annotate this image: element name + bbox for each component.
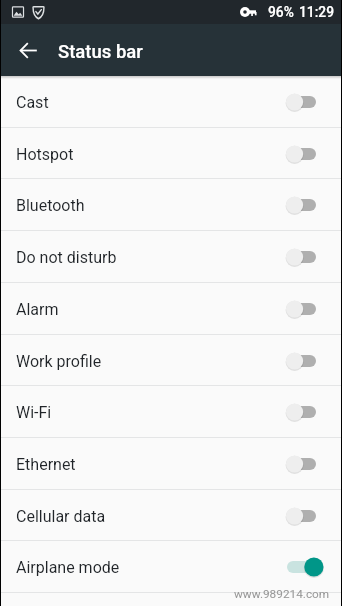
- staticText: 11:29: [299, 4, 335, 20]
- button[interactable]: Hotspot: [0, 128, 342, 180]
- button[interactable]: Cellular data: [0, 490, 342, 542]
- staticText: 96%: [268, 4, 294, 20]
- staticText: Alarm: [16, 300, 59, 319]
- staticText: Hotspot: [16, 145, 74, 164]
- staticText: Cast: [16, 93, 49, 112]
- staticText: Bluetooth: [16, 196, 85, 215]
- button[interactable]: Wi-Fi: [0, 386, 342, 438]
- staticText: Airplane mode: [16, 558, 120, 577]
- staticText: www.989214.com: [234, 587, 330, 601]
- button[interactable]: Cast: [0, 76, 342, 128]
- staticText: Work profile: [16, 352, 102, 371]
- button[interactable]: Work profile: [0, 335, 342, 387]
- button[interactable]: Do not disturb: [0, 231, 342, 283]
- staticText: Status bar: [58, 41, 143, 63]
- staticText: Cellular data: [16, 507, 106, 526]
- staticText: Ethernet: [16, 455, 76, 474]
- staticText: Wi-Fi: [16, 403, 52, 422]
- button[interactable]: Airplane mode: [0, 541, 342, 593]
- button[interactable]: Bluetooth: [0, 179, 342, 231]
- button[interactable]: Alarm: [0, 283, 342, 335]
- button[interactable]: Ethernet: [0, 438, 342, 490]
- staticText: Do not disturb: [16, 248, 117, 267]
- button[interactable]: Back: [0, 24, 52, 76]
